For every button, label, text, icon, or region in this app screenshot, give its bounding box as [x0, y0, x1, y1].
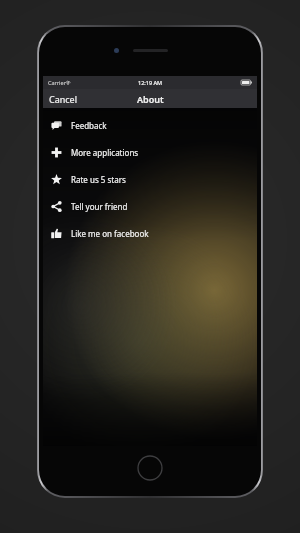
staticText: Feedback	[71, 120, 107, 131]
staticText: Rate us 5 stars	[71, 174, 126, 185]
staticText: Tell your friend	[71, 201, 128, 212]
staticText: More applications	[71, 147, 139, 158]
staticText: About	[137, 93, 164, 105]
staticText: Like me on facebook	[71, 228, 149, 239]
button[interactable]: Home	[137, 455, 163, 481]
button[interactable]: Like me on facebook	[43, 220, 257, 247]
button[interactable]: Tell your friend	[43, 193, 257, 220]
staticText: 12:19 AM	[138, 79, 163, 86]
button[interactable]: Rate us 5 stars	[43, 166, 257, 193]
staticText: Carrier	[48, 79, 66, 86]
button[interactable]: Feedback	[43, 112, 257, 139]
button[interactable]: Cancel	[43, 90, 84, 108]
staticText: Cancel	[49, 93, 78, 105]
button[interactable]: More applications	[43, 139, 257, 166]
